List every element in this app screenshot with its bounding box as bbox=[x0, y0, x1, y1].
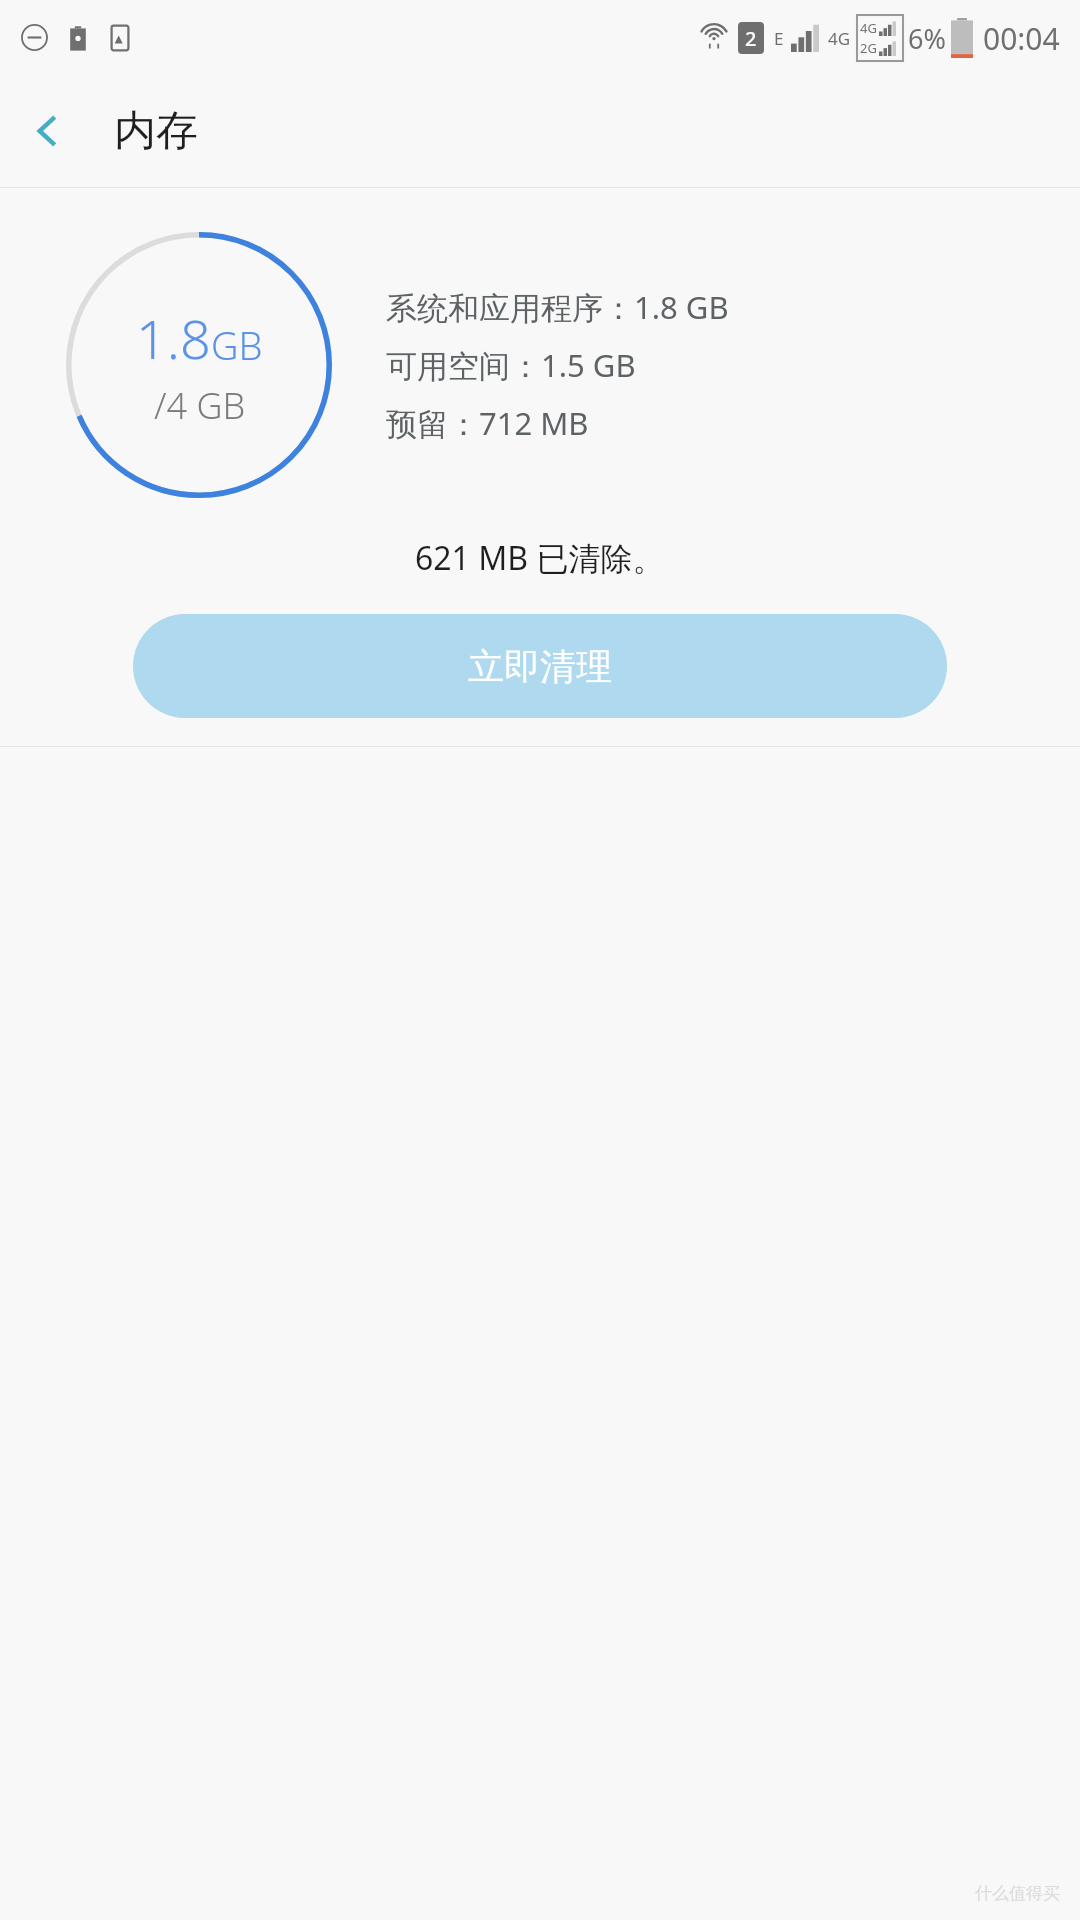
staticText: 2G bbox=[860, 39, 877, 57]
staticText: 立即清理 bbox=[468, 644, 612, 689]
staticText: 4G bbox=[860, 19, 877, 37]
staticText: 2 bbox=[745, 25, 757, 52]
staticText: GB bbox=[211, 319, 263, 371]
staticText: 内存 bbox=[114, 105, 198, 158]
staticText: 1.8 bbox=[136, 301, 211, 375]
staticText: 什么值得买 bbox=[975, 1883, 1060, 1904]
staticText: 621 MB 已清除。 bbox=[415, 536, 665, 580]
staticText: E bbox=[774, 27, 784, 50]
button[interactable]: Back bbox=[0, 83, 96, 179]
staticText: 4G bbox=[828, 27, 851, 50]
staticText: 可用空间：1.5 GB bbox=[386, 344, 636, 386]
staticText: 预留：712 MB bbox=[386, 402, 589, 444]
staticText: 系统和应用程序：1.8 GB bbox=[386, 286, 729, 328]
staticText: 6% bbox=[908, 20, 946, 57]
button[interactable]: 立即清理 bbox=[133, 614, 947, 718]
staticText: 00:04 bbox=[983, 18, 1060, 59]
staticText: /4 GB bbox=[154, 381, 246, 430]
